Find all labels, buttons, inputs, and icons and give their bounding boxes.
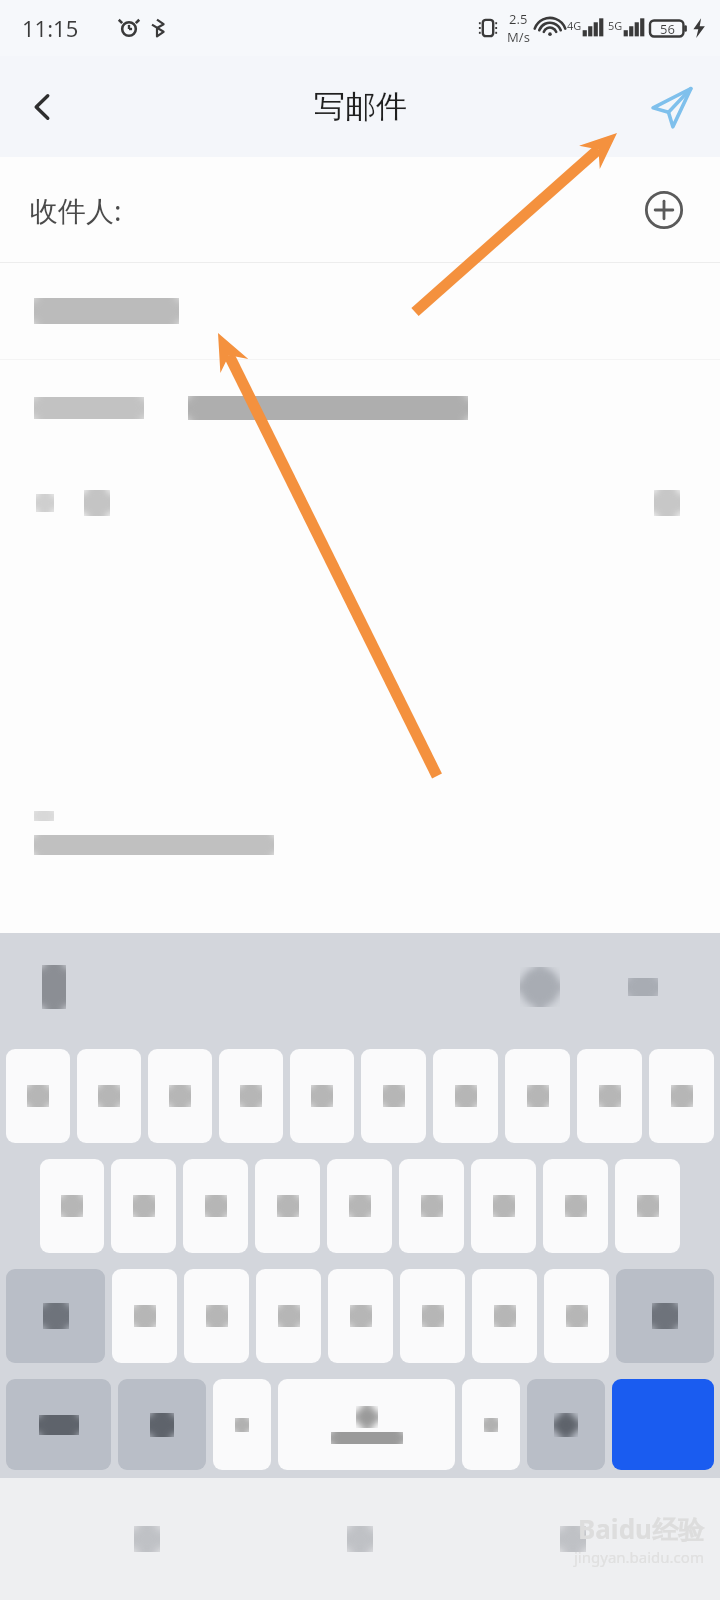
staticText: Baidu经验 bbox=[578, 1511, 704, 1547]
button[interactable] bbox=[219, 1049, 283, 1143]
staticText: 4G bbox=[567, 18, 582, 33]
button[interactable] bbox=[615, 1159, 680, 1253]
button[interactable]: Send bbox=[628, 56, 720, 157]
staticText: jingyan.baidu.com bbox=[574, 1547, 704, 1567]
button[interactable]: Backspace bbox=[616, 1269, 714, 1363]
button[interactable] bbox=[148, 1049, 212, 1143]
button[interactable] bbox=[290, 1049, 354, 1143]
button[interactable] bbox=[184, 1269, 249, 1363]
button[interactable]: Add recipient bbox=[638, 184, 690, 236]
button[interactable] bbox=[472, 1269, 537, 1363]
button[interactable]: Navigation bbox=[546, 1512, 600, 1566]
staticText: 56 bbox=[660, 20, 675, 38]
staticText: M/s bbox=[507, 28, 530, 46]
button[interactable]: Period bbox=[462, 1379, 520, 1470]
button[interactable]: Shift bbox=[6, 1269, 105, 1363]
button[interactable] bbox=[40, 1159, 104, 1253]
button[interactable]: Back bbox=[0, 56, 86, 157]
button[interactable] bbox=[577, 1049, 642, 1143]
button[interactable] bbox=[255, 1159, 320, 1253]
button[interactable] bbox=[400, 1269, 465, 1363]
button[interactable] bbox=[77, 1049, 141, 1143]
button[interactable] bbox=[649, 1049, 714, 1143]
button[interactable]: Navigation bbox=[333, 1512, 387, 1566]
button[interactable] bbox=[543, 1159, 608, 1253]
button[interactable]: Enter bbox=[612, 1379, 714, 1470]
button[interactable]: Comma bbox=[213, 1379, 271, 1470]
button[interactable] bbox=[112, 1269, 177, 1363]
button[interactable] bbox=[6, 1049, 70, 1143]
button[interactable] bbox=[0, 263, 720, 359]
button[interactable]: Space bbox=[278, 1379, 455, 1470]
button[interactable] bbox=[0, 360, 720, 455]
button[interactable] bbox=[505, 1049, 570, 1143]
button[interactable] bbox=[520, 967, 560, 1007]
button[interactable] bbox=[42, 965, 66, 1009]
staticText: 2.5 bbox=[509, 10, 528, 28]
button[interactable] bbox=[433, 1049, 498, 1143]
button[interactable] bbox=[183, 1159, 248, 1253]
button[interactable] bbox=[471, 1159, 536, 1253]
button[interactable]: 收件人: bbox=[0, 157, 720, 262]
staticText: 5G bbox=[608, 18, 623, 33]
button[interactable]: Navigation bbox=[120, 1512, 174, 1566]
button[interactable]: Language bbox=[118, 1379, 206, 1470]
button[interactable] bbox=[544, 1269, 609, 1363]
staticText: 收件人: bbox=[30, 191, 122, 229]
button[interactable] bbox=[256, 1269, 321, 1363]
staticText: 写邮件 bbox=[314, 87, 407, 126]
button[interactable] bbox=[327, 1159, 392, 1253]
button[interactable] bbox=[399, 1159, 464, 1253]
button[interactable]: Emoji bbox=[527, 1379, 605, 1470]
button[interactable]: Symbols bbox=[6, 1379, 111, 1470]
button[interactable] bbox=[361, 1049, 426, 1143]
button[interactable] bbox=[328, 1269, 393, 1363]
staticText: 11:15 bbox=[22, 13, 79, 43]
button[interactable] bbox=[111, 1159, 176, 1253]
